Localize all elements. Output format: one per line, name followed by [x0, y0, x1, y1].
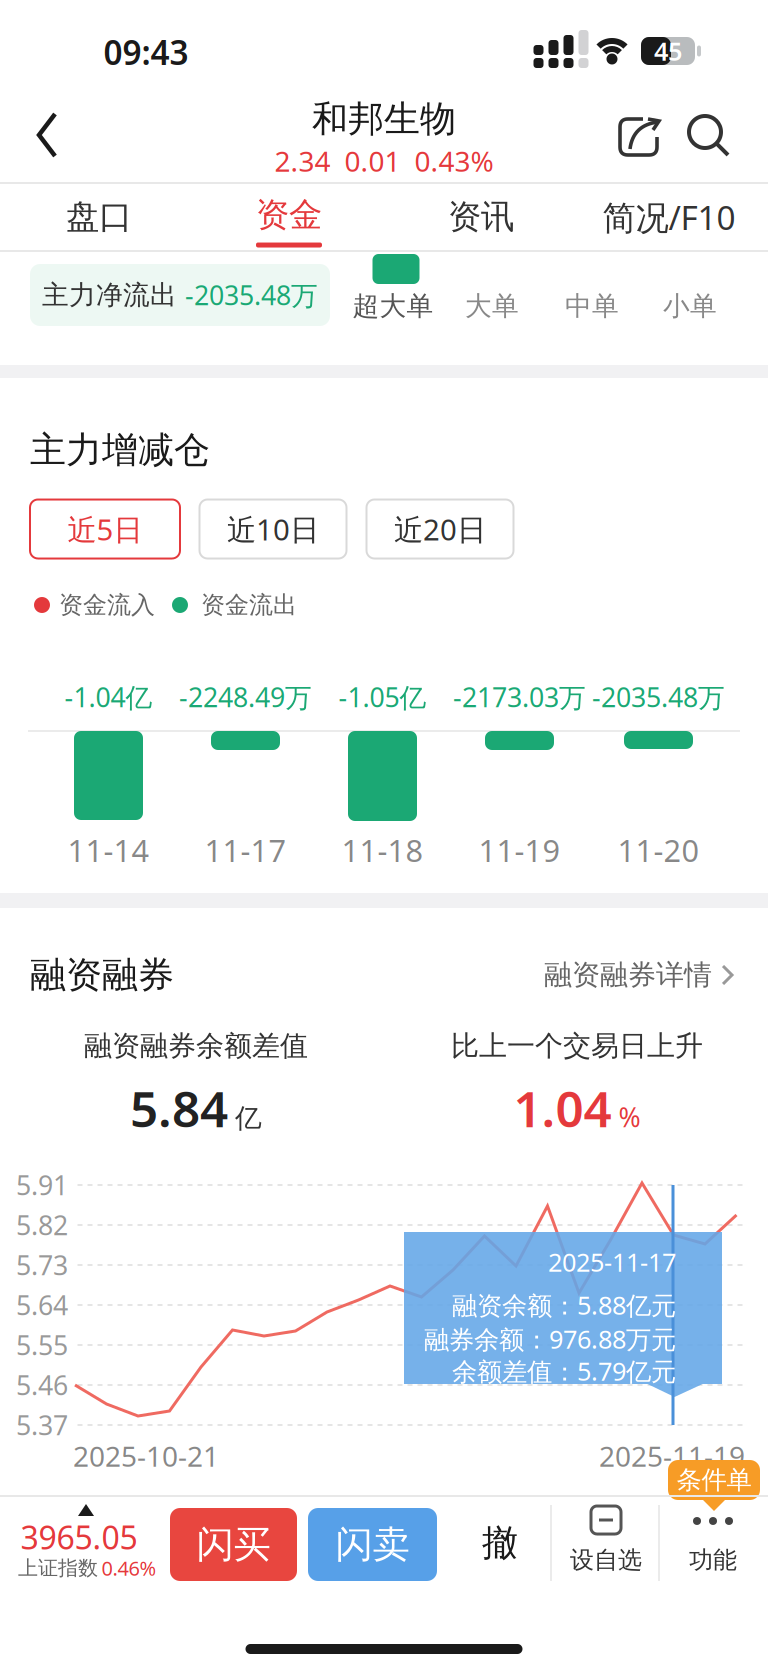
staticText: 亿 [235, 1102, 262, 1135]
button[interactable]: 3965.05 [18, 1502, 168, 1582]
staticText: 主力增减仓 [30, 428, 210, 472]
staticText: 上证指数 [18, 1556, 98, 1580]
staticText: 11-18 [341, 830, 423, 870]
staticText: 融资融券 [30, 953, 174, 997]
staticText: 盘口 [66, 196, 132, 237]
staticText: 5.73 [16, 1247, 68, 1283]
staticText: 11-20 [617, 830, 699, 870]
staticText: 余额差值：5.79亿元 [452, 1354, 676, 1388]
staticText: 闪卖 [335, 1522, 409, 1567]
button[interactable]: 近20日 [366, 499, 513, 558]
staticText: 近10日 [227, 509, 319, 548]
staticText: 资金 [256, 194, 322, 235]
button[interactable]: Search [686, 113, 732, 159]
staticText: % [618, 1099, 640, 1134]
staticText: 2025-11-17 [548, 1245, 676, 1279]
button[interactable]: Share [617, 113, 663, 159]
staticText: 11-14 [67, 830, 149, 870]
staticText: 资金流出 [201, 590, 297, 620]
button[interactable]: 功能 [661, 1503, 765, 1579]
button[interactable]: 设自选 [553, 1503, 659, 1579]
button[interactable]: 近10日 [199, 499, 346, 558]
staticText: 资金流入 [59, 590, 155, 620]
button[interactable]: 近5日 [30, 499, 180, 558]
staticText: 0.46% [101, 1555, 156, 1581]
staticText: 1.04 [513, 1075, 611, 1141]
staticText: 条件单 [676, 1464, 751, 1495]
staticText: 和邦生物 [312, 97, 456, 141]
staticText: 主力净流出 [42, 279, 177, 311]
staticText: 超大单 [352, 290, 433, 322]
staticText: -2035.48万 [592, 679, 725, 715]
staticText: 5.37 [16, 1407, 68, 1443]
staticText: 资讯 [448, 196, 514, 237]
button[interactable]: 资金 [214, 185, 364, 249]
staticText: 设自选 [570, 1545, 642, 1575]
button[interactable]: 闪买 [170, 1508, 297, 1581]
staticText: 简况/F10 [602, 195, 735, 239]
staticText: 融资融券详情 [544, 958, 712, 992]
staticText: 5.91 [16, 1167, 68, 1203]
staticText: 小单 [663, 290, 717, 322]
button[interactable]: 简况/F10 [584, 185, 754, 249]
staticText: 融资余额：5.88亿元 [452, 1288, 676, 1322]
button[interactable]: Back [35, 110, 63, 160]
staticText: 中单 [565, 290, 619, 322]
staticText: -1.05亿 [338, 679, 426, 715]
staticText: 近5日 [67, 509, 142, 548]
staticText: 5.64 [16, 1287, 68, 1323]
staticText: 融资融券余额差值 [84, 1029, 308, 1063]
staticText: 近20日 [394, 509, 486, 548]
staticText: 09:43 [103, 30, 188, 74]
button[interactable]: 融资融券详情 [544, 958, 736, 992]
staticText: 5.46 [16, 1367, 68, 1403]
staticText: 闪买 [196, 1522, 270, 1567]
staticText: 11-19 [478, 830, 560, 870]
staticText: 功能 [689, 1545, 737, 1575]
staticText: -2035.48万 [185, 277, 318, 313]
staticText: 5.82 [16, 1207, 68, 1243]
staticText: 45 [654, 34, 682, 68]
staticText: 大单 [465, 290, 519, 322]
button[interactable]: 闪卖 [308, 1508, 437, 1581]
staticText: -1.04亿 [64, 679, 152, 715]
staticText: 比上一个交易日上升 [451, 1029, 703, 1063]
button[interactable]: 条件单 [668, 1460, 760, 1511]
staticText: 2025-11-19 [599, 1437, 745, 1475]
button[interactable]: 撤 [455, 1505, 545, 1581]
staticText: -2173.03万 [453, 679, 586, 715]
staticText: 融券余额：976.88万元 [424, 1322, 676, 1356]
staticText: -2248.49万 [179, 679, 312, 715]
button[interactable]: 资讯 [406, 185, 556, 249]
staticText: 2.34 0.01 0.43% [274, 142, 493, 180]
staticText: 5.55 [16, 1327, 68, 1363]
staticText: 11-17 [204, 830, 286, 870]
staticText: 2025-10-21 [73, 1437, 219, 1475]
button[interactable]: 盘口 [24, 185, 174, 249]
staticText: 3965.05 [20, 1516, 137, 1558]
staticText: 5.84 [130, 1075, 228, 1141]
staticText: 撤 [482, 1521, 518, 1565]
